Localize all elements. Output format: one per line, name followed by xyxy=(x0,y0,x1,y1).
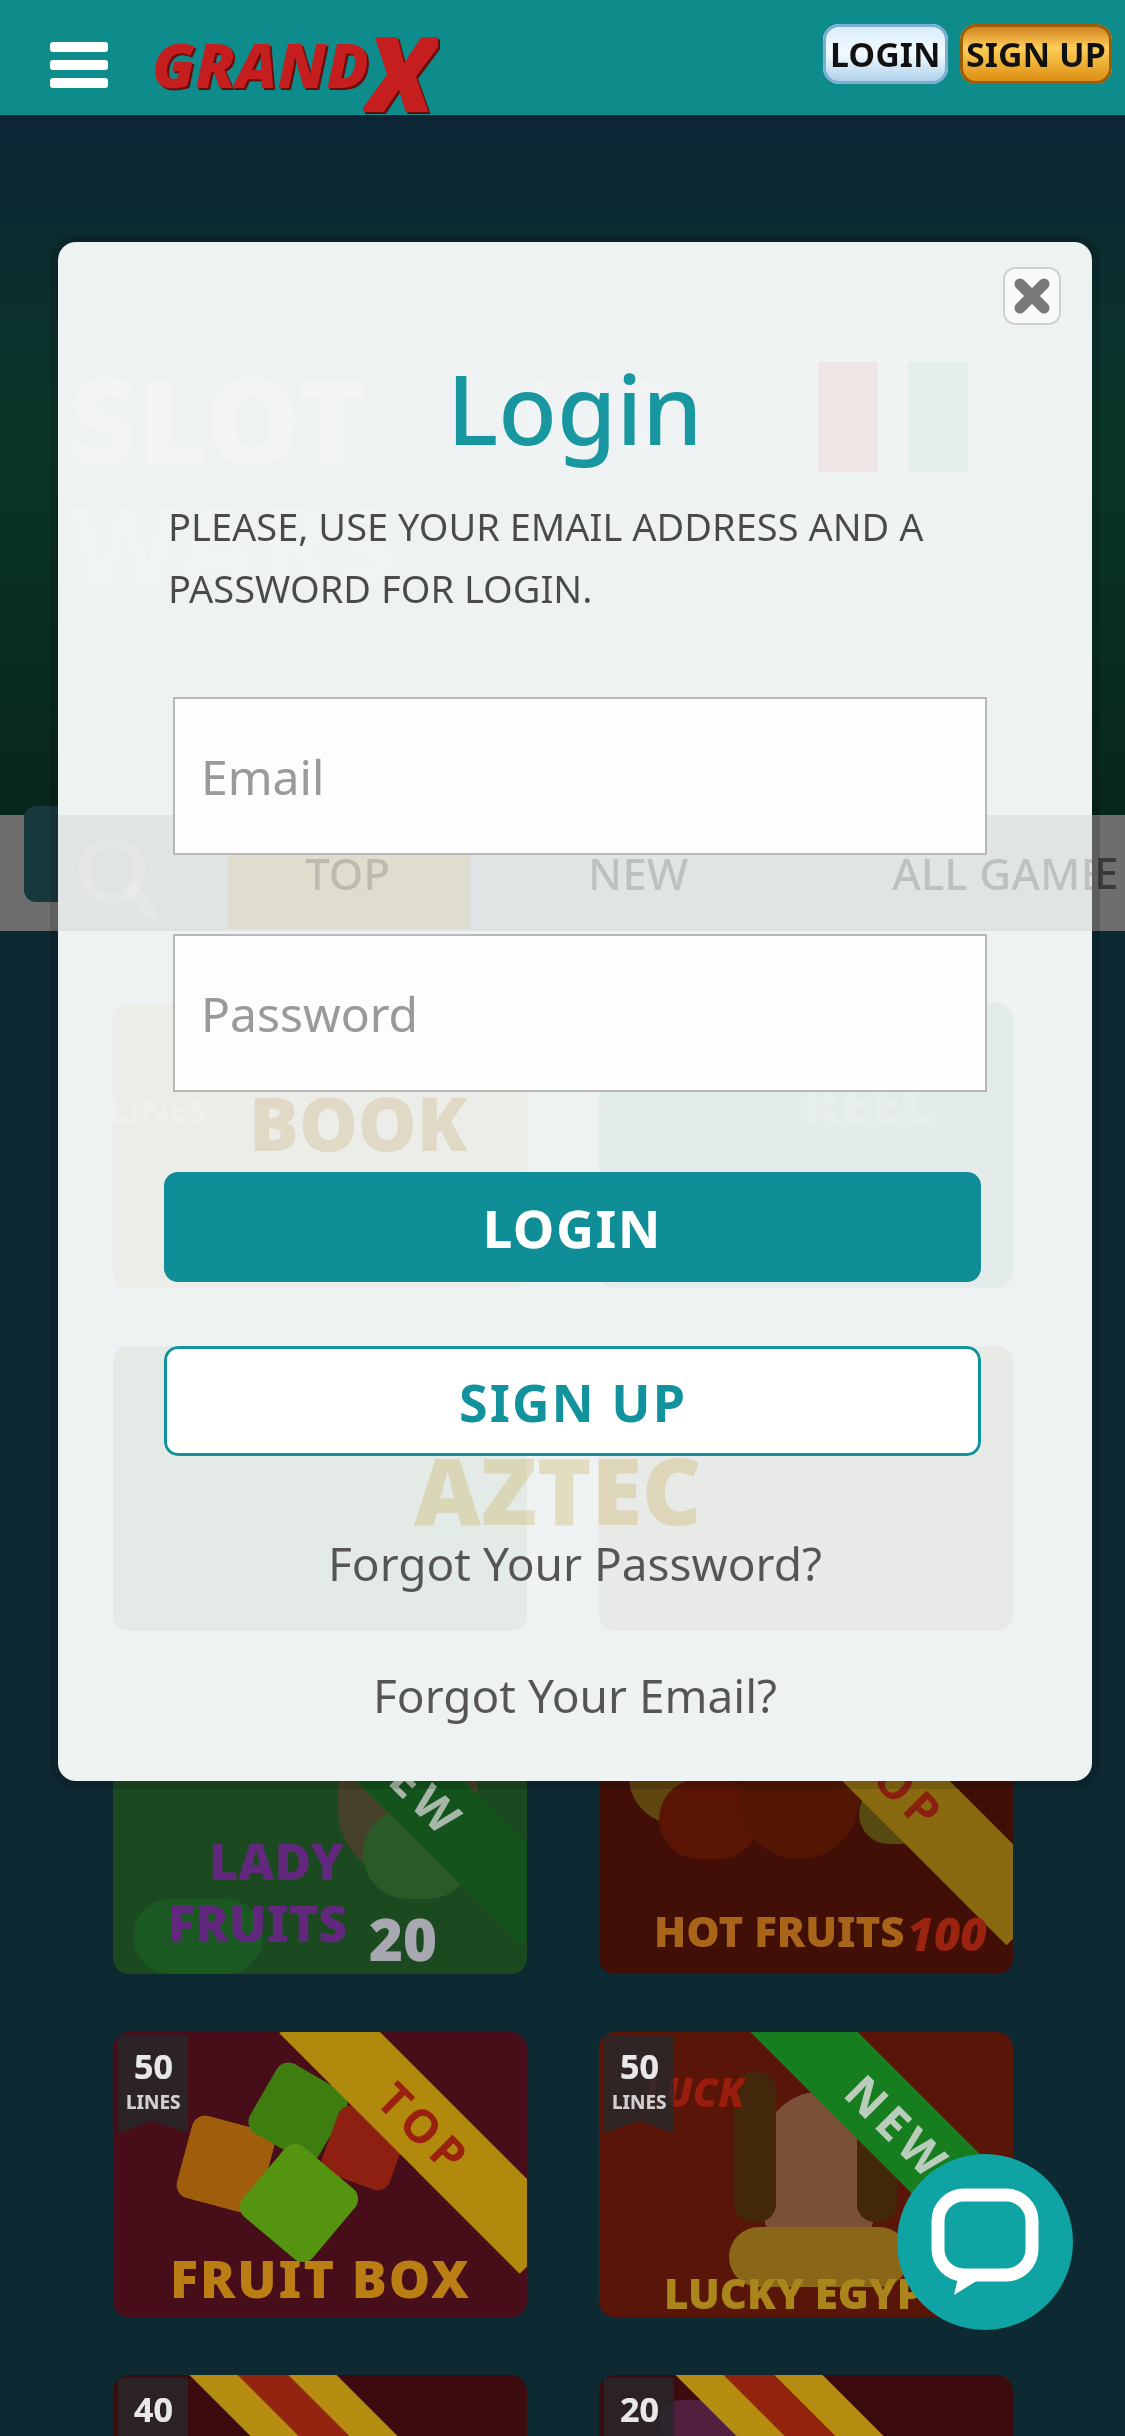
staticText: 40 xyxy=(134,2386,173,2432)
staticText: Email xyxy=(201,744,325,809)
staticText: HOT FRUITS xyxy=(654,1902,905,1956)
staticText: NEW xyxy=(346,1717,479,1851)
staticText: NEW xyxy=(588,843,689,903)
staticText: LINES xyxy=(612,2089,667,2115)
button[interactable]: LOGIN xyxy=(164,1172,981,1282)
button[interactable] xyxy=(599,1003,1013,1288)
staticText: AZTEC xyxy=(414,1427,702,1527)
staticText: X xyxy=(365,0,440,114)
button[interactable] xyxy=(599,1346,1013,1631)
staticText: BOOK xyxy=(249,1072,468,1152)
button[interactable]: TOP xyxy=(113,2032,527,2317)
staticText: ALL GAME xyxy=(892,843,1092,903)
staticText: FRUIT BOX xyxy=(170,2242,471,2302)
button[interactable] xyxy=(113,1003,527,1288)
staticText: GRAND xyxy=(152,22,369,102)
button[interactable]: LUCK xyxy=(599,2032,1013,2317)
button[interactable]: SIGN UP xyxy=(960,24,1112,84)
staticText: SIGN UP xyxy=(966,31,1106,77)
staticText: LUCK xyxy=(644,2064,745,2116)
button[interactable]: NEW xyxy=(113,1689,527,1974)
staticText: LOGIN xyxy=(830,31,941,77)
staticText: 50 xyxy=(134,2043,173,2089)
staticText: WARS xyxy=(68,467,396,617)
staticText: TOP xyxy=(838,1724,960,1845)
button[interactable] xyxy=(1003,267,1061,325)
staticText: Forgot Your Email? xyxy=(373,1664,777,1727)
staticText: LOGIN xyxy=(483,1192,663,1263)
staticText: TOP xyxy=(305,843,391,903)
button[interactable]: 40 xyxy=(113,2375,527,2436)
staticText: LADY xyxy=(209,1827,344,1887)
button[interactable] xyxy=(40,30,120,100)
button[interactable] xyxy=(113,1346,527,1631)
staticText: 100 xyxy=(907,1902,988,1956)
button[interactable]: Email xyxy=(173,697,987,855)
staticText: 20 xyxy=(369,1899,437,1963)
staticText: NEW xyxy=(832,2060,965,2194)
staticText: Forgot Your Password? xyxy=(328,1532,822,1595)
button[interactable]: SIGN UP xyxy=(164,1346,981,1456)
staticText: PLEASE, USE YOUR EMAIL ADDRESS AND A xyxy=(168,500,924,552)
staticText: 20 xyxy=(620,2386,659,2432)
button[interactable]: LOGIN xyxy=(823,24,948,84)
staticText: LINES xyxy=(109,1087,207,1127)
button[interactable]: TOP xyxy=(599,1689,1013,1974)
staticText: REEL xyxy=(802,1064,934,1140)
button[interactable]: Password xyxy=(173,934,987,1092)
button[interactable]: Forgot Your Password? xyxy=(225,1528,925,1598)
button[interactable]: Forgot Your Email? xyxy=(225,1660,925,1730)
staticText: Login xyxy=(447,342,703,473)
staticText: FRUITS xyxy=(168,1889,348,1949)
staticText: Password xyxy=(201,981,419,1046)
staticText: 100 xyxy=(498,342,672,478)
button[interactable]: 20 xyxy=(599,2375,1013,2436)
staticText: LINES xyxy=(126,2089,181,2115)
staticText: LUCKY EGYPT xyxy=(664,2264,949,2316)
staticText: GRAND xyxy=(154,24,371,104)
staticText: E xyxy=(1094,842,1119,902)
staticText: PASSWORD FOR LOGIN. xyxy=(168,562,593,614)
button[interactable] xyxy=(897,2154,1073,2330)
staticText: SIGN UP xyxy=(459,1366,687,1437)
staticText: X xyxy=(363,0,438,112)
staticText: 50 xyxy=(620,2043,659,2089)
staticText: TOP xyxy=(364,2068,486,2189)
